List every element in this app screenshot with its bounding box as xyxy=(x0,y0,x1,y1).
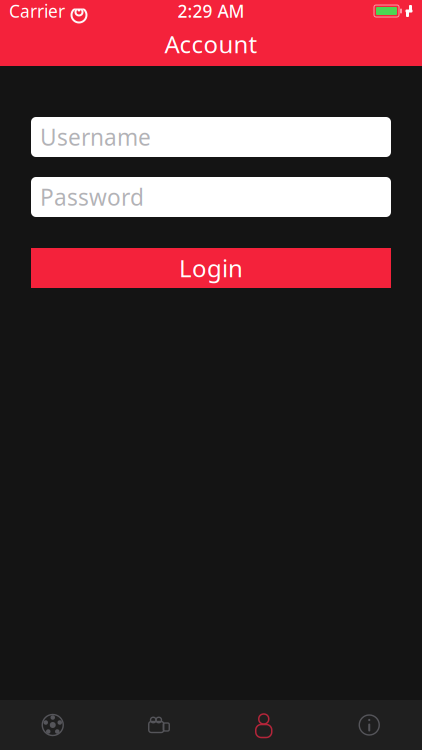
staticText: Carrier xyxy=(9,0,65,22)
staticText: Username xyxy=(40,122,151,152)
staticText: Account xyxy=(164,28,257,60)
staticText: Login xyxy=(179,252,243,284)
button[interactable]: Login xyxy=(31,248,391,288)
button[interactable]: Account xyxy=(211,713,316,737)
staticText: 2:29 AM xyxy=(177,0,244,22)
button[interactable]: Info xyxy=(316,713,422,737)
staticText: Password xyxy=(40,182,144,212)
button[interactable]: Matches xyxy=(0,713,105,737)
button[interactable]: Videos xyxy=(105,713,211,737)
